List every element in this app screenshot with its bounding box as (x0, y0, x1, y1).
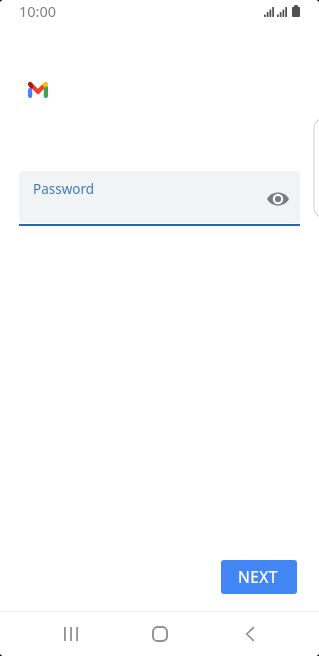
button[interactable]: Home (136, 611, 184, 656)
button[interactable]: Back (226, 611, 274, 656)
button[interactable]: Recent apps (47, 611, 95, 656)
staticText: 10:00 (19, 1, 57, 21)
button[interactable]: Password (19, 171, 300, 223)
staticText: NEXT (238, 566, 278, 587)
button[interactable]: NEXT (221, 560, 297, 594)
staticText: Password (33, 180, 95, 198)
button[interactable]: Show password (257, 178, 299, 220)
